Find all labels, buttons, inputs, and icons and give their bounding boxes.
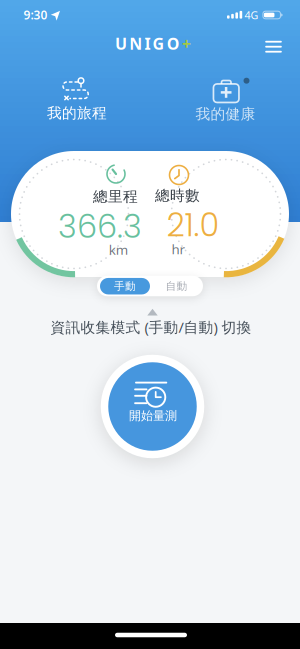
staticText: km: [109, 241, 128, 258]
staticText: 4G: [244, 8, 258, 22]
staticText: hr: [171, 240, 185, 258]
staticText: I: [144, 33, 150, 54]
button[interactable]: Menu: [255, 31, 291, 63]
staticText: 開始量測: [129, 408, 177, 423]
staticText: 總里程: [93, 187, 138, 205]
staticText: 9:30: [23, 7, 47, 23]
button[interactable]: 手動: [100, 278, 150, 294]
staticText: 資訊收集模式 (手動/自動) 切換: [50, 317, 251, 337]
button[interactable]: 我的旅程: [42, 71, 112, 127]
staticText: 21.0: [166, 203, 219, 247]
staticText: 自動: [165, 280, 187, 293]
staticText: 366.3: [58, 204, 142, 249]
staticText: 手動: [114, 280, 136, 293]
button[interactable]: 自動: [152, 278, 200, 294]
staticText: 我的旅程: [47, 104, 107, 122]
staticText: 總時數: [155, 186, 200, 204]
button[interactable]: 開始量測: [100, 354, 204, 458]
button[interactable]: 我的健康: [187, 71, 263, 127]
staticText: 我的健康: [195, 105, 255, 123]
staticText: U: [115, 33, 127, 54]
staticText: O: [167, 33, 180, 54]
staticText: N: [129, 33, 142, 54]
staticText: G: [153, 33, 165, 54]
staticText: +: [182, 33, 191, 54]
